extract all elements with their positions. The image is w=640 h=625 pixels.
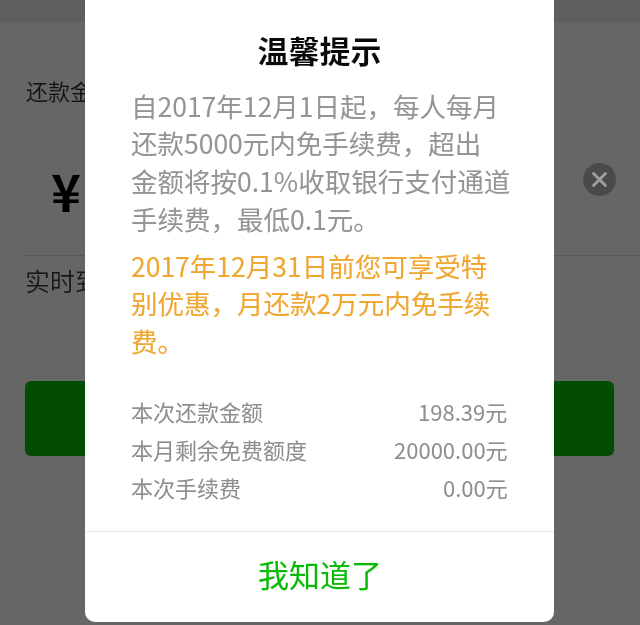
staticText: ¥ [51, 153, 82, 227]
button[interactable]: 确认还款 [25, 381, 614, 456]
staticText: 本月剩余免费额度 [131, 433, 308, 465]
staticText: 0.00元 [443, 471, 508, 503]
staticText: 2017年12月31日前您可享受特 别优惠，月还款2万元内免手续 费。 [131, 246, 491, 360]
staticText: 198.39元 [418, 395, 508, 427]
staticText: 实时到账 [25, 262, 126, 298]
staticText: 我知道了 [258, 551, 382, 596]
button[interactable]: Close [583, 163, 616, 196]
staticText: 20000.00元 [394, 433, 508, 465]
button[interactable]: 我知道了 [85, 532, 554, 622]
staticText: 本次还款金额 [131, 395, 264, 427]
staticText: 自2017年12月1日起，每人每月 还款5000元内免手续费，超出 金额将按0.… [131, 86, 511, 238]
staticText: 温馨提示 [85, 27, 554, 72]
staticText: 还款金额 [26, 74, 115, 106]
staticText: 本次手续费 [131, 471, 242, 503]
